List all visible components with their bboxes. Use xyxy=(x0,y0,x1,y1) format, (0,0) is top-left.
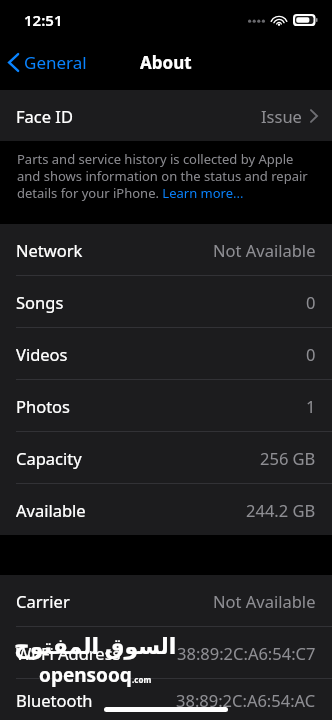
staticText: السوق المفتوح xyxy=(14,630,177,660)
staticText: Capacity xyxy=(16,447,82,469)
staticText: Network xyxy=(16,239,83,261)
staticText: Parts and service history is collected b… xyxy=(17,150,314,202)
staticText: 38:89:2C:A6:54:AC xyxy=(176,689,316,711)
staticText: Carrier xyxy=(16,590,70,612)
staticText: .com xyxy=(132,674,152,685)
staticText: Bluetooth xyxy=(16,689,93,711)
staticText: 244.2 GB xyxy=(246,499,316,521)
button[interactable]: General xyxy=(0,45,95,80)
button[interactable]: Capacity xyxy=(0,432,332,483)
button[interactable]: Face ID xyxy=(0,90,332,141)
button[interactable]: Bluetooth xyxy=(0,679,332,720)
button[interactable]: Videos xyxy=(0,328,332,379)
staticText: Wi-Fi Address xyxy=(16,642,121,664)
staticText: opensooq xyxy=(39,662,132,688)
staticText: 0 xyxy=(306,291,316,313)
button[interactable]: Songs xyxy=(0,276,332,327)
button[interactable]: Wi-Fi Address xyxy=(0,627,332,678)
staticText: 256 GB xyxy=(260,447,316,469)
staticText: Not Available xyxy=(213,239,316,261)
staticText: Photos xyxy=(16,395,71,417)
staticText: Not Available xyxy=(213,590,316,612)
staticText: Issue xyxy=(261,105,302,127)
button[interactable]: Network xyxy=(0,224,332,275)
staticText: 12:51 xyxy=(24,10,63,30)
button[interactable]: Carrier xyxy=(0,575,332,626)
staticText: 0 xyxy=(306,343,316,365)
staticText: 1 xyxy=(306,395,316,417)
staticText: Songs xyxy=(16,291,64,313)
staticText: General xyxy=(24,51,87,74)
button[interactable]: Photos xyxy=(0,380,332,431)
staticText: About xyxy=(140,51,192,74)
button[interactable]: Available xyxy=(0,484,332,535)
staticText: 38:89:2C:A6:54:C7 xyxy=(177,642,316,664)
staticText: Videos xyxy=(16,343,68,365)
staticText: Available xyxy=(16,499,86,521)
staticText: Face ID xyxy=(16,105,73,127)
